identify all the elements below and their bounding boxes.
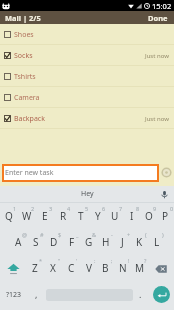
staticText: Hey — [81, 189, 94, 199]
button[interactable]: B — [97, 255, 114, 282]
button[interactable]: Backspace — [148, 255, 174, 282]
button[interactable]: V — [80, 255, 97, 282]
staticText: 3 — [49, 205, 53, 212]
button[interactable]: Shoes — [0, 24, 174, 45]
staticText: 7 — [119, 205, 123, 212]
staticText: Backpack — [14, 114, 45, 124]
staticText: Tshirts — [14, 72, 36, 82]
button[interactable]: . — [133, 281, 148, 308]
button[interactable]: K — [131, 229, 148, 256]
staticText: ' — [76, 257, 78, 264]
staticText: P — [162, 209, 169, 223]
button[interactable]: R — [54, 203, 72, 230]
button[interactable]: D — [45, 229, 63, 256]
button[interactable]: N — [114, 255, 131, 282]
staticText: $ — [58, 231, 62, 238]
staticText: W — [22, 209, 32, 223]
button[interactable]: Hey — [71, 187, 104, 201]
button[interactable]: Enter — [148, 281, 174, 308]
staticText: _ — [76, 231, 79, 238]
staticText: T — [78, 209, 84, 223]
staticText: 8 — [136, 205, 140, 212]
staticText: Socks — [14, 51, 33, 61]
staticText: Mall | 2/5 — [5, 13, 41, 23]
button[interactable]: Space — [46, 281, 133, 308]
staticText: 1 — [13, 205, 17, 212]
staticText: ( — [145, 231, 147, 238]
button[interactable]: Z — [26, 255, 44, 282]
button[interactable]: Socks — [0, 45, 174, 66]
staticText: D — [50, 235, 58, 249]
staticText: X — [50, 261, 56, 275]
staticText: Q — [5, 209, 13, 223]
staticText: H — [102, 235, 110, 249]
staticText: * — [39, 257, 43, 264]
button[interactable]: L — [148, 229, 165, 256]
button[interactable]: ?123 — [0, 281, 27, 308]
staticText: Z — [32, 261, 38, 275]
staticText: 4 — [67, 205, 71, 212]
button[interactable]: G — [80, 229, 97, 256]
staticText: O — [145, 209, 153, 223]
staticText: B — [102, 261, 109, 275]
staticText: F — [69, 235, 75, 249]
staticText: , — [35, 288, 38, 300]
staticText: 2 — [31, 205, 35, 212]
staticText: S — [33, 235, 39, 249]
staticText: L — [154, 235, 160, 249]
staticText: G — [85, 235, 93, 249]
button[interactable]: W — [18, 203, 36, 230]
button[interactable]: I — [123, 203, 140, 230]
staticText: C — [68, 261, 75, 275]
button[interactable]: Shift — [0, 255, 26, 282]
button[interactable]: Add task — [160, 166, 173, 179]
staticText: @ — [22, 231, 27, 238]
button[interactable]: Backpack — [0, 108, 174, 129]
staticText: 0 — [170, 205, 174, 212]
button[interactable]: Enter new task — [2, 164, 159, 182]
button[interactable]: Tshirts — [0, 66, 174, 87]
button[interactable]: Camera — [0, 87, 174, 108]
staticText: 5 — [85, 205, 89, 212]
staticText: ; — [111, 257, 113, 264]
button[interactable]: Mall | 2/5 — [0, 11, 174, 24]
button[interactable]: E — [36, 203, 54, 230]
button[interactable]: Voice input — [159, 189, 170, 200]
staticText: R — [60, 209, 67, 223]
staticText: ?123 — [6, 290, 22, 300]
button[interactable]: F — [63, 229, 80, 256]
button[interactable]: H — [97, 229, 114, 256]
staticText: 6 — [102, 205, 106, 212]
staticText: K — [136, 235, 143, 249]
button[interactable]: U — [106, 203, 123, 230]
staticText: ! — [128, 257, 130, 264]
staticText: + — [127, 231, 131, 238]
staticText: Just now — [145, 115, 169, 123]
button[interactable]: X — [44, 255, 62, 282]
staticText: ? — [144, 257, 147, 264]
staticText: ) — [162, 231, 164, 238]
staticText: Shoes — [14, 30, 34, 40]
button[interactable]: C — [62, 255, 80, 282]
button[interactable]: M — [131, 255, 148, 282]
button[interactable]: Y — [89, 203, 106, 230]
staticText: . — [139, 288, 142, 300]
staticText: Y — [95, 209, 101, 223]
button[interactable]: P — [157, 203, 174, 230]
button[interactable]: A — [9, 229, 27, 256]
staticText: J — [121, 235, 124, 249]
button[interactable]: Done — [144, 11, 174, 24]
staticText: M — [135, 261, 145, 275]
button[interactable]: Q — [0, 203, 18, 230]
staticText: I — [130, 209, 134, 223]
button[interactable]: S — [27, 229, 45, 256]
button[interactable]: T — [72, 203, 89, 230]
staticText: U — [111, 209, 119, 223]
staticText: " — [58, 257, 61, 264]
staticText: Enter new task — [5, 168, 54, 178]
staticText: V — [86, 261, 92, 275]
button[interactable]: O — [140, 203, 157, 230]
staticText: : — [94, 257, 96, 264]
button[interactable]: J — [114, 229, 131, 256]
button[interactable]: , — [27, 281, 46, 308]
